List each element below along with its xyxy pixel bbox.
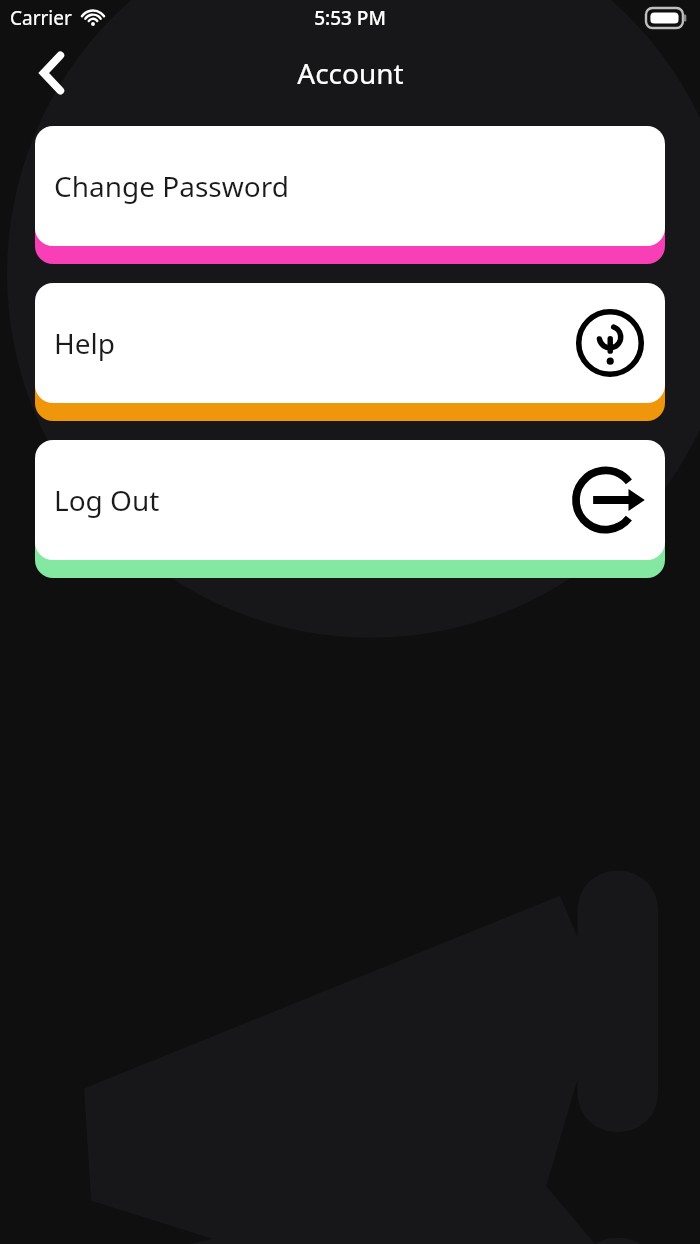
staticText: Change Password [54,167,289,205]
button[interactable]: Change Password [35,126,665,264]
other: Log out [572,462,648,538]
button[interactable]: Back [24,45,80,101]
staticText: 5:53 PM [314,5,386,31]
staticText: Carrier [10,5,72,31]
staticText: Help [54,324,115,362]
button[interactable]: Log Out [35,440,665,578]
staticText: Account [297,54,404,92]
button[interactable]: Help [35,283,665,421]
staticText: Log Out [54,481,160,519]
other: Help [572,305,648,381]
